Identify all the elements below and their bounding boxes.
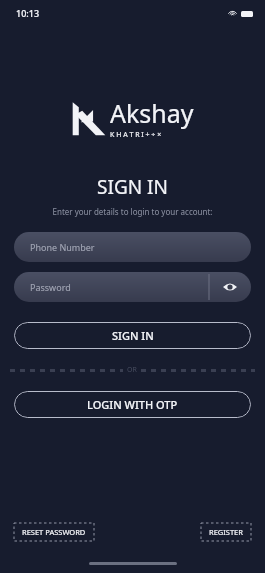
button[interactable]: SIGN IN — [14, 322, 251, 349]
button[interactable]: LOGIN WITH OTP — [14, 391, 251, 418]
staticText: LOGIN WITH OTP — [87, 397, 178, 412]
staticText: SIGN IN — [0, 174, 265, 200]
button[interactable]: Password — [14, 272, 251, 302]
staticText: Password — [30, 281, 71, 293]
button[interactable]: Phone Number — [14, 232, 251, 262]
button[interactable]: REGISTER — [201, 523, 251, 541]
staticText: OR — [127, 365, 137, 375]
staticText: SIGN IN — [112, 328, 154, 343]
button[interactable]: RESET PASSWORD — [14, 523, 94, 541]
staticText: RESET PASSWORD — [22, 527, 86, 537]
staticText: K H A T R I + ÷ × — [110, 130, 162, 140]
button[interactable]: Show password — [209, 272, 251, 302]
staticText: Akshay — [110, 96, 194, 130]
staticText: 10:13 — [16, 7, 40, 19]
staticText: Phone Number — [30, 241, 95, 253]
staticText: REGISTER — [209, 527, 243, 537]
staticText: Enter your details to login to your acco… — [0, 206, 265, 217]
